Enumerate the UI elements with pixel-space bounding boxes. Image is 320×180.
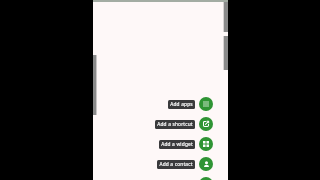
button[interactable]: Add apps: [168, 100, 195, 109]
button[interactable]: Add a contact: [199, 157, 213, 171]
button[interactable]: Add a widget: [199, 137, 213, 151]
button[interactable]: Add a contact: [157, 160, 195, 169]
button[interactable]: Add a shortcut: [155, 120, 195, 129]
button[interactable]: Add a shortcut: [199, 117, 213, 131]
staticText: Add a contact: [159, 161, 193, 168]
staticText: Add apps: [170, 101, 193, 108]
staticText: Add a widget: [161, 141, 193, 148]
button[interactable]: Add a widget: [159, 140, 195, 149]
button[interactable]: Add apps: [199, 97, 213, 111]
button[interactable]: Add: [199, 177, 213, 180]
staticText: Add a shortcut: [157, 121, 193, 128]
